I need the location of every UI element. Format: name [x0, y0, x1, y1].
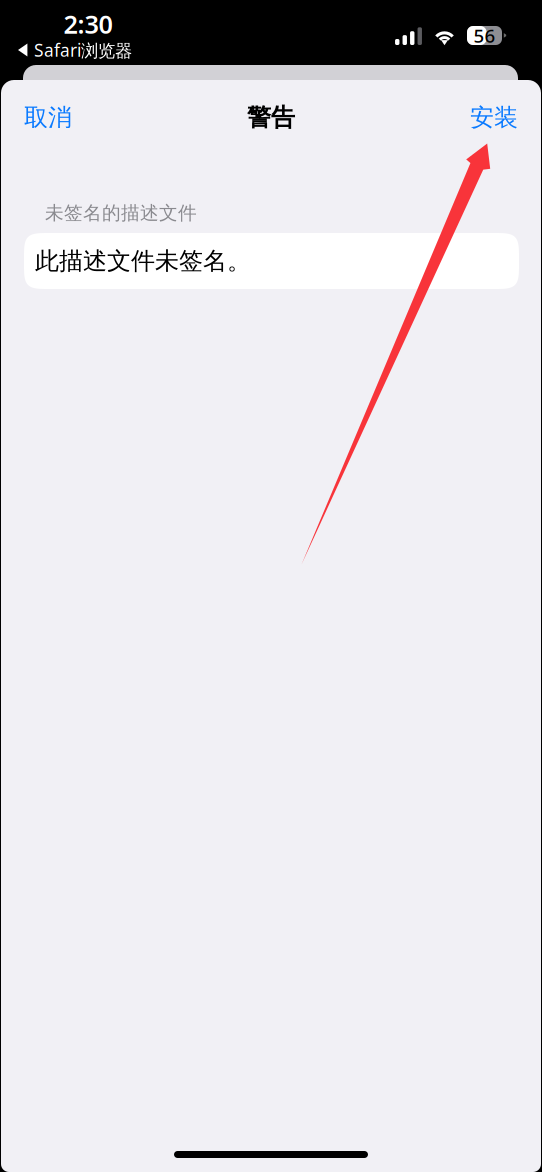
button[interactable]: 取消	[1, 80, 151, 155]
staticText: 取消	[24, 103, 72, 132]
button[interactable]: 安装	[391, 80, 541, 155]
staticText: 警告	[247, 103, 295, 132]
button[interactable]: Safari浏览器	[0, 38, 280, 62]
staticText: 未签名的描述文件	[45, 201, 197, 224]
staticText: 此描述文件未签名。	[35, 246, 251, 276]
staticText: 2:30	[63, 7, 112, 41]
staticText: Safari浏览器	[34, 38, 132, 61]
staticText: 安装	[470, 103, 518, 132]
staticText: 56	[473, 23, 495, 48]
